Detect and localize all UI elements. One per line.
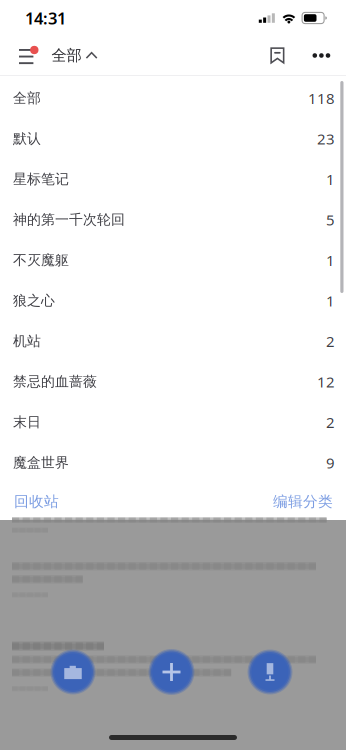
button[interactable]: Bookmarks xyxy=(258,36,299,75)
button[interactable]: 机站 xyxy=(0,321,346,361)
button[interactable]: 魔盒世界 xyxy=(0,442,346,483)
button[interactable]: 末日 xyxy=(0,402,346,442)
staticText: 1 xyxy=(326,169,335,189)
staticText: 2 xyxy=(326,412,335,432)
staticText: 回收站 xyxy=(14,492,59,511)
staticText: 2 xyxy=(326,331,335,351)
staticText: 全部 xyxy=(51,46,81,65)
button[interactable]: 全部 xyxy=(42,36,104,75)
staticText: 全部 xyxy=(13,89,41,107)
button[interactable]: 默认 xyxy=(0,118,346,159)
button[interactable]: Menu xyxy=(0,36,42,75)
staticText: 5 xyxy=(326,210,335,230)
button[interactable]: 星标笔记 xyxy=(0,159,346,199)
staticText: 末日 xyxy=(13,413,41,431)
staticText: 神的第一千次轮回 xyxy=(13,211,125,228)
staticText: 狼之心 xyxy=(13,292,55,309)
button[interactable]: More xyxy=(299,36,346,75)
staticText: 118 xyxy=(308,88,335,108)
staticText: 不灭魔躯 xyxy=(13,251,69,269)
staticText: 魔盒世界 xyxy=(13,454,69,471)
button[interactable]: Voice note xyxy=(247,649,292,694)
staticText: 9 xyxy=(326,453,335,473)
button[interactable]: New photo note xyxy=(50,649,95,694)
staticText: 1 xyxy=(326,291,335,311)
staticText: 1 xyxy=(326,250,335,270)
staticText: 编辑分类 xyxy=(273,492,333,511)
button[interactable]: 回收站 xyxy=(0,485,59,517)
staticText: 禁忌的血蔷薇 xyxy=(13,373,97,390)
staticText: 23 xyxy=(317,129,335,149)
button[interactable]: 神的第一千次轮回 xyxy=(0,199,346,240)
button[interactable]: 编辑分类 xyxy=(273,485,346,517)
staticText: 14:31 xyxy=(25,7,66,29)
button[interactable]: 狼之心 xyxy=(0,280,346,321)
staticText: 机站 xyxy=(13,332,41,350)
staticText: 星标笔记 xyxy=(13,170,69,188)
button[interactable]: 禁忌的血蔷薇 xyxy=(0,361,346,402)
staticText: 默认 xyxy=(13,130,41,147)
button[interactable]: New note xyxy=(148,649,194,695)
staticText: 12 xyxy=(317,372,335,392)
button[interactable]: 全部 xyxy=(0,78,346,118)
button[interactable]: 不灭魔躯 xyxy=(0,240,346,280)
